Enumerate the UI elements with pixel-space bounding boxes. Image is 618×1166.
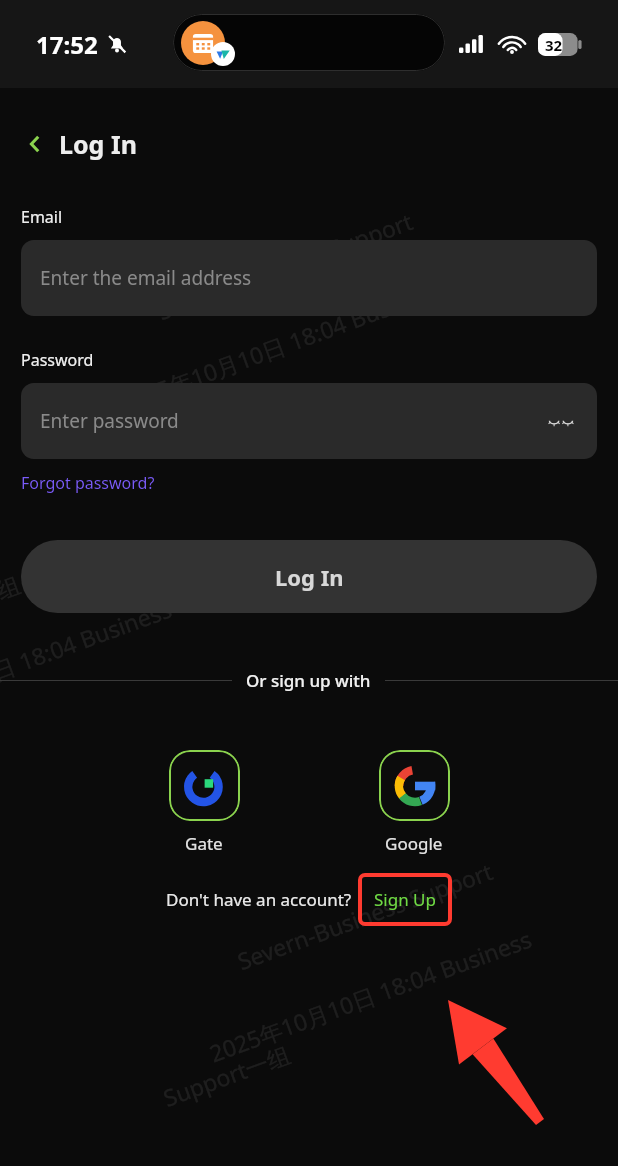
staticText: Log In: [275, 562, 344, 592]
staticText: Log In: [59, 127, 137, 161]
staticText: Gate: [185, 832, 223, 855]
staticText: Severn-Business Support: [153, 205, 417, 326]
button[interactable]: Log In: [21, 540, 597, 613]
button[interactable]: Enter the email address: [21, 240, 597, 316]
staticText: 17:52: [36, 28, 98, 61]
staticText: Severn-Business Support: [233, 855, 497, 976]
staticText: Forgot password?: [21, 472, 155, 494]
staticText: Enter password: [40, 408, 544, 434]
staticText: Google: [385, 832, 443, 855]
button[interactable]: Forgot password?: [21, 470, 155, 496]
staticText: 2025年10月10日 18:04 Business: [115, 273, 446, 418]
staticText: Email: [21, 206, 63, 228]
button[interactable]: Enter password: [21, 383, 597, 459]
button[interactable]: Back: [18, 127, 52, 161]
staticText: Don't have an account?: [166, 888, 352, 911]
staticText: Enter the email address: [40, 265, 578, 291]
button[interactable]: Toggle password visibility: [544, 404, 578, 438]
button[interactable]: Gate: [99, 750, 309, 855]
staticText: Support一组: [169, 388, 304, 463]
staticText: Support一组: [0, 568, 24, 643]
staticText: 32: [545, 35, 563, 55]
staticText: Or sign up with: [246, 669, 371, 692]
staticText: 2025年10月10日 18:04 Business: [205, 923, 536, 1068]
staticText: Support一组: [159, 1038, 294, 1113]
staticText: Password: [21, 349, 94, 371]
button[interactable]: Sign Up: [374, 888, 436, 911]
staticText: 2025年10月10日 18:04 Business: [0, 593, 176, 738]
button[interactable]: Google: [309, 750, 519, 855]
staticText: Sign Up: [374, 888, 436, 911]
